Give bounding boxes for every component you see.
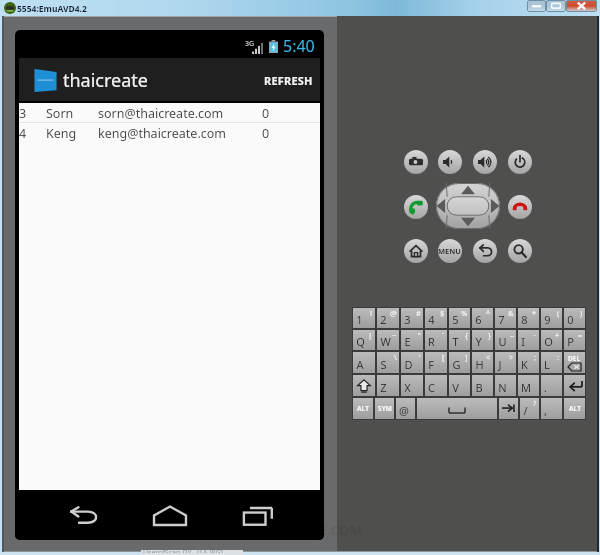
staticText: 2	[380, 312, 387, 327]
button[interactable]: X	[401, 375, 423, 396]
button[interactable]: ALT	[564, 398, 585, 419]
button[interactable]: H	[472, 352, 493, 373]
button[interactable]: J	[495, 352, 516, 373]
button[interactable]: P	[564, 330, 585, 350]
button[interactable]: 5	[449, 308, 470, 328]
staticText: REFRESH	[264, 73, 313, 88]
staticText: 0	[262, 125, 270, 142]
button[interactable]: R	[425, 330, 447, 350]
button[interactable]: V	[449, 375, 470, 396]
button[interactable]: Back	[38, 491, 126, 540]
button[interactable]: Volume down	[438, 150, 462, 174]
staticText: |	[368, 330, 373, 340]
button[interactable]: End call	[508, 195, 532, 219]
staticText: E	[404, 334, 411, 349]
button[interactable]: Call	[404, 195, 428, 219]
button[interactable]: B	[472, 375, 493, 396]
button[interactable]: M	[518, 375, 539, 396]
button[interactable]	[353, 375, 375, 396]
staticText: (	[557, 308, 560, 318]
staticText: G	[452, 357, 461, 372]
button[interactable]: O	[541, 330, 562, 350]
button[interactable]: SYM	[375, 398, 394, 419]
button[interactable]	[417, 398, 497, 419]
button[interactable]: Minimize	[527, 0, 546, 12]
button[interactable]: Home	[404, 239, 428, 263]
button[interactable]: 8	[518, 308, 539, 328]
staticText: N	[498, 380, 507, 395]
button[interactable]: C	[425, 375, 447, 396]
button[interactable]: Maximize	[546, 0, 566, 12]
staticText: 4	[428, 312, 435, 327]
button[interactable]: Y	[472, 330, 493, 350]
button[interactable]: ALT	[353, 398, 373, 419]
button[interactable]	[564, 375, 585, 396]
staticText: $	[440, 308, 445, 318]
button[interactable]: D-pad	[436, 183, 500, 229]
button[interactable]: K	[518, 352, 539, 373]
button[interactable]: U	[495, 330, 516, 350]
staticText: S	[380, 357, 387, 372]
button[interactable]: .	[541, 375, 562, 396]
button[interactable]: REFRESH	[262, 63, 315, 98]
button[interactable]: E	[401, 330, 423, 350]
staticText: 3	[404, 312, 411, 327]
button[interactable]: Volume up	[473, 150, 497, 174]
button[interactable]: 3	[401, 308, 423, 328]
button[interactable]: DEL	[564, 352, 585, 373]
button[interactable]: 4	[425, 308, 447, 328]
staticText: ,	[544, 403, 547, 418]
staticText: ALT	[569, 404, 581, 413]
button[interactable]: L	[541, 352, 562, 373]
button[interactable]: A	[353, 352, 375, 373]
staticText: F	[428, 357, 434, 372]
button[interactable]: N	[495, 375, 516, 396]
button[interactable]: Power	[508, 150, 532, 174]
staticText: V	[452, 380, 459, 395]
button[interactable]: T	[449, 330, 470, 350]
button[interactable]: Home	[126, 491, 214, 540]
button[interactable]: /	[520, 398, 539, 419]
staticText: 5554:EmuAVD4.2	[17, 3, 87, 15]
button[interactable]: W	[377, 330, 399, 350]
button[interactable]: Q	[353, 330, 375, 350]
button[interactable]: D	[401, 352, 423, 373]
button[interactable]: Search	[508, 239, 532, 263]
button[interactable]	[499, 398, 518, 419]
button[interactable]: 2	[377, 308, 399, 328]
staticText: @	[390, 308, 397, 318]
staticText: <	[486, 352, 491, 362]
button[interactable]: Camera	[404, 150, 428, 174]
button[interactable]: Z	[377, 375, 399, 396]
button[interactable]: S	[377, 352, 399, 373]
button[interactable]: G	[449, 352, 470, 373]
button[interactable]: F	[425, 352, 447, 373]
staticText: Z	[380, 380, 387, 395]
button[interactable]: 0	[564, 308, 585, 328]
staticText: *	[532, 308, 537, 318]
button[interactable]: @	[396, 398, 415, 419]
staticText: \	[394, 352, 397, 362]
button[interactable]: 4	[19, 123, 320, 142]
button[interactable]: 7	[495, 308, 516, 328]
button[interactable]: 3	[19, 103, 320, 122]
staticText: P	[567, 334, 574, 349]
button[interactable]: Close	[566, 0, 597, 12]
staticText: 5	[452, 312, 459, 327]
staticText: !	[370, 308, 373, 318]
staticText: T	[452, 334, 459, 349]
button[interactable]: Back	[473, 239, 497, 263]
button[interactable]: 1	[353, 308, 375, 328]
staticText: ”	[418, 330, 421, 340]
button[interactable]: Recents	[214, 491, 302, 540]
button[interactable]: I	[518, 330, 539, 350]
staticText: ;	[534, 352, 537, 362]
button[interactable]: 6	[472, 308, 493, 328]
button[interactable]: 9	[541, 308, 562, 328]
button[interactable]: ,	[541, 398, 562, 419]
button[interactable]: MENU	[438, 239, 462, 263]
staticText: –	[510, 330, 514, 340]
staticText: sorn@thaicreate.com	[98, 105, 224, 122]
staticText: thaicreate	[63, 68, 148, 93]
staticText: 8	[521, 312, 528, 327]
